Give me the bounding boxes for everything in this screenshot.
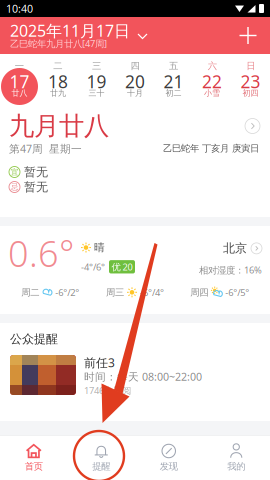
staticText: 19 (86, 70, 106, 93)
staticText: 日 (246, 60, 255, 72)
staticText: 22 (202, 70, 222, 93)
staticText: 北京 (223, 241, 247, 256)
staticText: 小雪 (204, 88, 220, 98)
staticText: 0.6° (8, 229, 74, 277)
staticText: 2025年11月17日 (10, 20, 130, 41)
staticText: 初四 (242, 88, 258, 98)
staticText: 宜 (10, 167, 18, 177)
button[interactable]: More lunar details (245, 118, 261, 133)
staticText: 三 (92, 60, 101, 72)
staticText: 周四 (190, 287, 208, 298)
staticText: 发现 (160, 461, 178, 472)
button[interactable]: Add event (232, 19, 264, 51)
button[interactable]: 前任3 (10, 346, 260, 397)
staticText: 暂无 (24, 180, 48, 194)
staticText: 四 (130, 60, 139, 72)
staticText: 乙巳蛇年 丁亥月 庚寅日 (163, 143, 259, 154)
staticText: 前任3 (84, 354, 115, 370)
staticText: 21 (163, 70, 183, 93)
staticText: -6°/2° (55, 286, 79, 298)
button[interactable]: 发现 (135, 435, 202, 480)
staticText: -6°/4° (140, 286, 164, 298)
staticText: 17 (9, 70, 29, 93)
staticText: 公众提醒 (10, 332, 58, 346)
staticText: 五 (169, 60, 178, 72)
staticText: 廿九 (50, 88, 66, 98)
staticText: 首页 (25, 461, 43, 472)
staticText: 我的 (227, 461, 245, 472)
staticText: 23 (240, 70, 260, 93)
staticText: 晴 (94, 241, 105, 254)
staticText: 1746人订阅 (84, 384, 131, 397)
staticText: 二 (53, 60, 62, 72)
staticText: 廿八 (11, 88, 27, 98)
button[interactable]: 提醒 (67, 435, 135, 480)
staticText: 时间：每天 08:00~22:00 (84, 369, 202, 384)
staticText: 九月廿八 (9, 110, 109, 141)
staticText: 六 (208, 60, 217, 72)
staticText: 第47周 星期一 (9, 141, 82, 156)
staticText: 20 (125, 70, 145, 93)
staticText: 提醒 (92, 461, 110, 472)
staticText: 18 (48, 70, 68, 93)
staticText: 十月 (127, 88, 143, 98)
staticText: 三十 (88, 88, 104, 98)
staticText: 一 (15, 60, 24, 72)
staticText: -4°/6° (81, 261, 105, 273)
staticText: 初二 (165, 88, 181, 98)
staticText: 乙巳蛇年九月廿八[47周] (10, 37, 107, 50)
staticText: 优 20 (111, 261, 132, 273)
staticText: 忌 (10, 182, 18, 192)
staticText: -6°/5° (225, 286, 249, 298)
staticText: 周三 (106, 287, 124, 298)
staticText: 暂无 (24, 165, 48, 179)
staticText: 10:40 (6, 1, 33, 16)
staticText: 周二 (21, 287, 39, 298)
button[interactable]: 首页 (0, 435, 67, 480)
button[interactable]: 我的 (202, 435, 270, 480)
staticText: 相对湿度：16% (199, 264, 262, 276)
